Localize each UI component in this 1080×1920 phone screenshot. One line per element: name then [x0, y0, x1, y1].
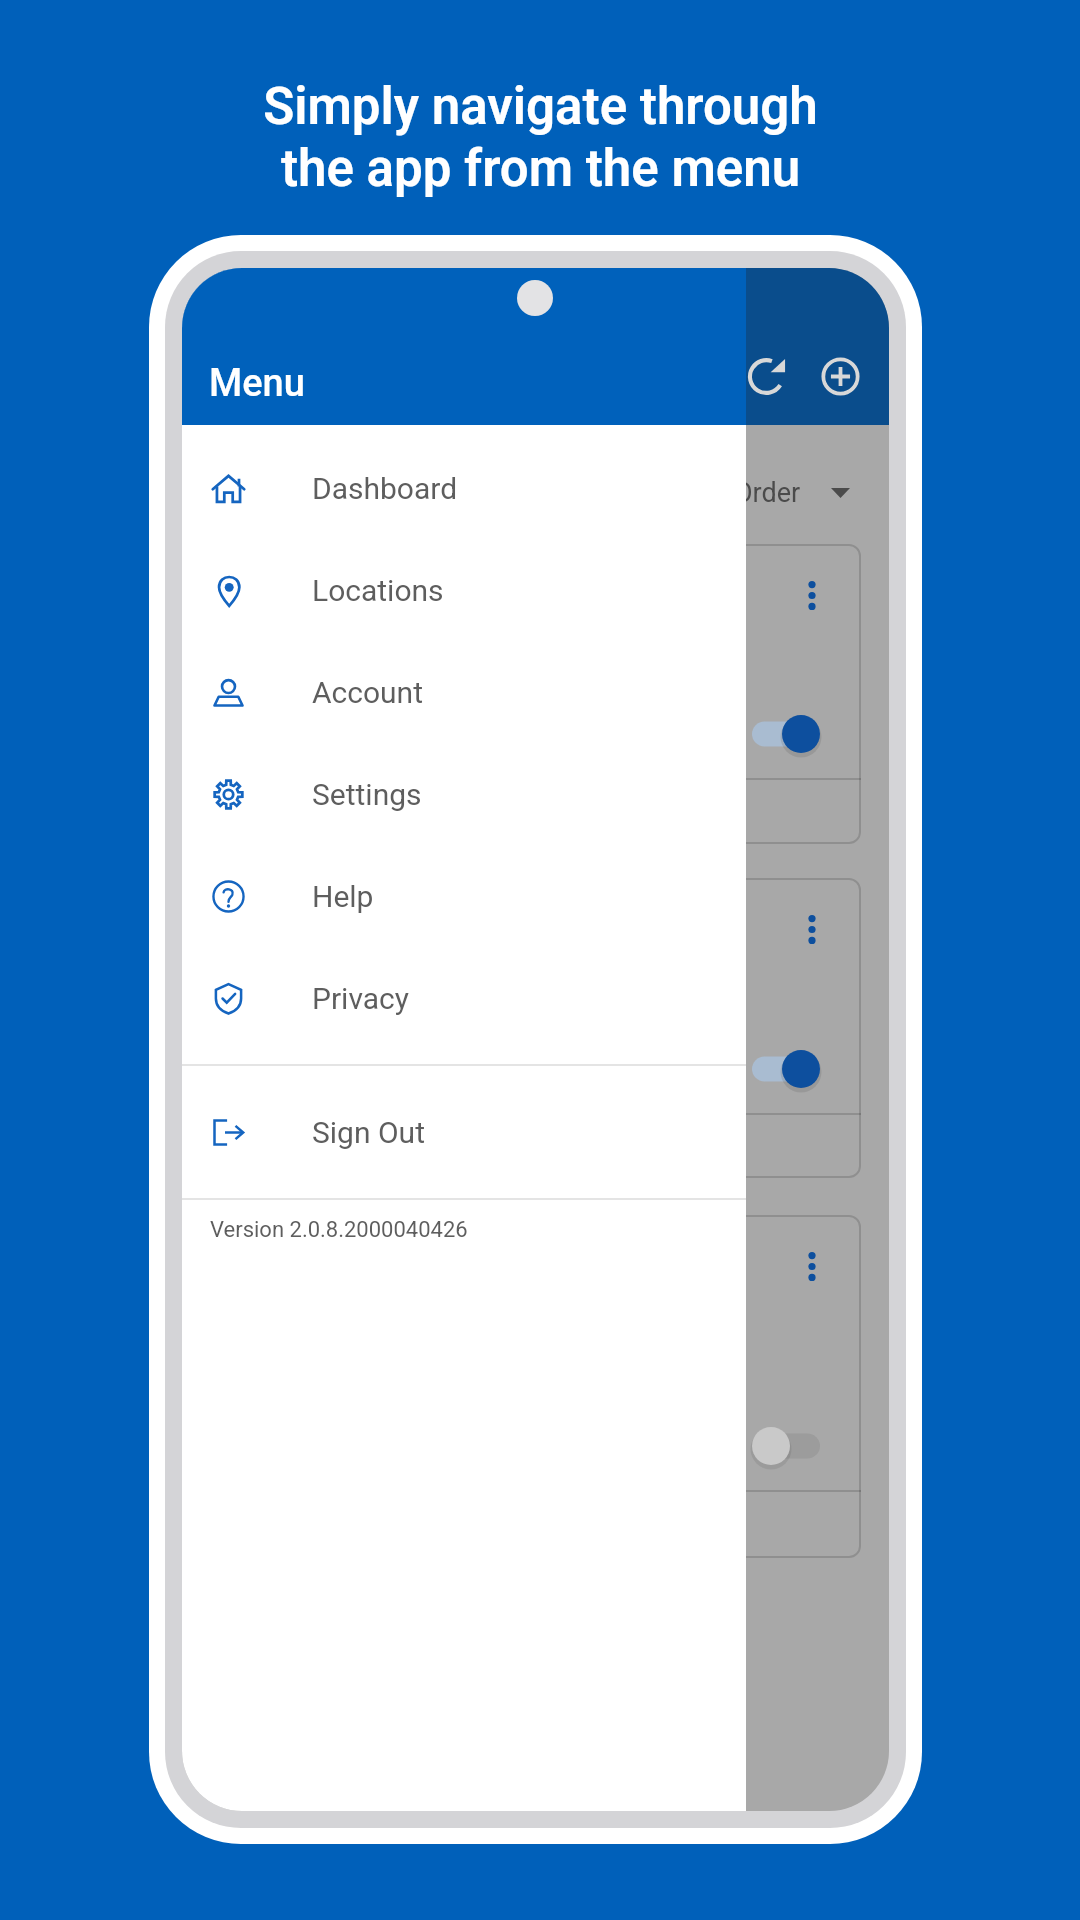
button[interactable]: More options — [790, 1229, 834, 1273]
button[interactable]: Add — [821, 357, 860, 396]
staticText: Privacy — [312, 981, 409, 1016]
staticText: Version 2.0.8.2000040426 — [210, 1217, 468, 1243]
button[interactable]: Toggle — [747, 1422, 829, 1470]
staticText: Simply navigate through the app from the… — [263, 77, 818, 199]
button[interactable]: Privacy — [182, 947, 746, 1049]
staticText: Locations — [312, 573, 444, 608]
button[interactable]: Sign Out — [182, 1081, 746, 1183]
button[interactable]: Dashboard — [182, 437, 746, 539]
button[interactable]: Locations — [182, 539, 746, 641]
button[interactable]: Help — [182, 845, 746, 947]
staticText: Help — [312, 879, 374, 914]
button[interactable]: Toggle — [747, 1045, 829, 1093]
button[interactable]: Order — [662, 467, 864, 519]
staticText: Menu — [209, 361, 305, 406]
staticText: Order — [734, 477, 801, 509]
staticText: Sign Out — [312, 1115, 425, 1150]
button[interactable]: Toggle — [747, 710, 829, 758]
button[interactable]: More options — [790, 892, 834, 936]
button[interactable]: More options — [790, 558, 834, 602]
staticText: Dashboard — [312, 471, 458, 506]
button[interactable]: Settings — [182, 743, 746, 845]
staticText: Settings — [312, 777, 422, 812]
staticText: Account — [312, 675, 424, 710]
button[interactable]: Account — [182, 641, 746, 743]
button[interactable]: Refresh — [748, 357, 787, 396]
